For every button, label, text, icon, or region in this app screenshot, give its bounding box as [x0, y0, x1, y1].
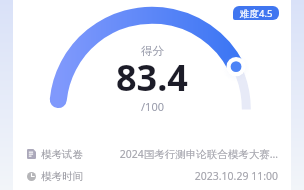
button[interactable]: 模考试卷	[13, 143, 291, 165]
staticText: 得分	[141, 44, 164, 58]
staticText: 83.4	[116, 53, 188, 102]
staticText: 难度4.5	[240, 7, 273, 20]
staticText: 模考时间	[41, 170, 83, 183]
staticText: 2024国考行测申论联合模考大赛…	[93, 147, 278, 161]
staticText: /100	[141, 99, 164, 114]
button[interactable]: 难度4.5	[233, 6, 279, 20]
staticText: 模考试卷	[41, 148, 83, 161]
button[interactable]: 模考时间	[13, 165, 291, 187]
staticText: 2023.10.29 11:00	[93, 169, 278, 183]
